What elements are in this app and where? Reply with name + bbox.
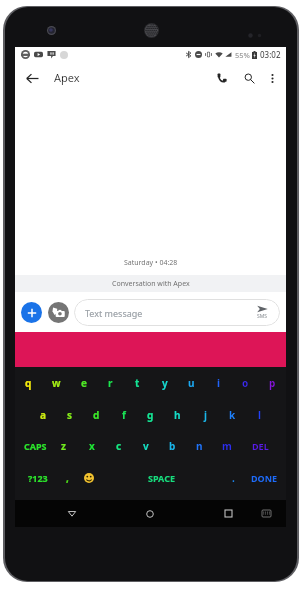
staticText: h	[174, 408, 181, 422]
button[interactable]: SPACE	[113, 461, 209, 494]
staticText: q	[25, 376, 32, 390]
button[interactable]: t	[124, 367, 151, 399]
button[interactable]: y	[151, 367, 178, 399]
button[interactable]: c	[105, 430, 132, 461]
button[interactable]: o	[232, 367, 259, 399]
button[interactable]: z	[50, 430, 77, 461]
button[interactable]: Back	[61, 500, 83, 527]
staticText: i	[217, 376, 220, 390]
button[interactable]: More options	[262, 68, 282, 88]
staticText: Conversation with Apex	[112, 279, 190, 289]
button[interactable]: n	[186, 430, 213, 461]
button[interactable]: d	[83, 399, 110, 430]
staticText: y	[162, 376, 168, 390]
button[interactable]: p	[259, 367, 286, 399]
button[interactable]: m	[213, 430, 240, 461]
button[interactable]: i	[205, 367, 232, 399]
staticText: Saturday • 04:28	[124, 258, 178, 268]
button[interactable]: CAPS	[16, 430, 54, 461]
staticText: z	[61, 439, 66, 453]
staticText: ,	[66, 471, 69, 485]
button[interactable]: Add attachment	[21, 302, 42, 323]
button[interactable]: j	[192, 399, 219, 430]
staticText: SMS	[257, 313, 268, 320]
staticText: v	[143, 439, 149, 453]
staticText: Apex	[54, 70, 80, 85]
staticText: o	[242, 376, 249, 390]
button[interactable]: x	[78, 430, 105, 461]
staticText: m	[222, 439, 232, 453]
button[interactable]: h	[164, 399, 191, 430]
staticText: .	[232, 471, 235, 485]
staticText: g	[147, 408, 154, 422]
button[interactable]: Text message	[74, 299, 280, 326]
button[interactable]: k	[219, 399, 246, 430]
staticText: x	[89, 439, 95, 453]
button[interactable]: g	[137, 399, 164, 430]
staticText: f	[122, 408, 126, 422]
staticText: b	[169, 439, 176, 453]
button[interactable]: q	[15, 367, 42, 399]
staticText: p	[269, 376, 276, 390]
button[interactable]: Hide keyboard	[256, 500, 276, 527]
button[interactable]: ,	[55, 461, 79, 494]
button[interactable]: l	[246, 399, 273, 430]
button[interactable]: a	[29, 399, 56, 430]
staticText: l	[258, 408, 261, 422]
button[interactable]: DONE	[244, 461, 284, 494]
button[interactable]: b	[159, 430, 186, 461]
staticText: 03:02	[260, 49, 281, 60]
staticText: w	[52, 376, 61, 390]
staticText: SPACE	[148, 472, 175, 484]
button[interactable]: Camera	[48, 302, 69, 323]
staticText: s	[67, 408, 73, 422]
staticText: DONE	[251, 472, 278, 484]
staticText: e	[81, 376, 87, 390]
button[interactable]: Back	[21, 67, 43, 89]
staticText: CAPS	[24, 440, 47, 452]
staticText: Text message	[85, 307, 143, 319]
button[interactable]: f	[110, 399, 137, 430]
button[interactable]: v	[132, 430, 159, 461]
staticText: ?123	[28, 472, 48, 484]
button[interactable]: Home	[139, 500, 161, 527]
staticText: c	[116, 439, 122, 453]
button[interactable]: Search	[237, 66, 261, 90]
button[interactable]: Call	[210, 66, 234, 90]
staticText: t	[135, 376, 140, 390]
staticText: u	[188, 376, 195, 390]
button[interactable]: DEL	[241, 430, 279, 461]
button[interactable]: w	[43, 367, 70, 399]
button[interactable]: Recent apps	[217, 500, 239, 527]
button[interactable]: Emoji	[77, 461, 101, 494]
button[interactable]: .	[221, 461, 245, 494]
staticText: r	[108, 376, 113, 390]
staticText: k	[229, 408, 236, 422]
staticText: n	[196, 439, 203, 453]
button[interactable]: ?123	[18, 461, 58, 494]
staticText: a	[40, 408, 46, 422]
button[interactable]: u	[178, 367, 205, 399]
staticText: 55%	[235, 50, 250, 60]
button[interactable]: r	[97, 367, 124, 399]
staticText: DEL	[252, 440, 269, 452]
button[interactable]: s	[56, 399, 83, 430]
button[interactable]: e	[70, 367, 97, 399]
staticText: d	[93, 408, 100, 422]
staticText: j	[204, 408, 207, 422]
